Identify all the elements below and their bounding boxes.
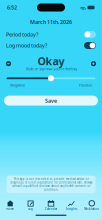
staticText: Home [6, 207, 14, 211]
staticText: Insights [66, 207, 77, 211]
staticText: This app is not intended to provide medi… [10, 177, 92, 191]
staticText: Negative [10, 82, 25, 88]
staticText: Period today? [6, 31, 38, 38]
staticText: March 11th, 2026 [30, 18, 72, 26]
button[interactable]: Calendar [41, 200, 61, 211]
button[interactable]: Raise mood [90, 60, 97, 67]
staticText: Log [28, 207, 33, 211]
staticText: Positive [79, 82, 92, 88]
button[interactable]: Insights [61, 200, 82, 211]
staticText: Log mood today? [6, 42, 47, 49]
button[interactable]: Log mood today? [6, 40, 96, 51]
staticText: Save [45, 97, 57, 104]
staticText: Meditation [84, 207, 99, 211]
button[interactable]: Save [4, 96, 98, 106]
button[interactable]: Meditation [82, 200, 102, 211]
button[interactable]: Period today? [6, 29, 96, 40]
button[interactable]: Log [20, 200, 41, 211]
staticText: Calendar [45, 207, 57, 211]
staticText: 6:52 [7, 4, 17, 11]
staticText: Okay [37, 54, 64, 68]
button[interactable]: Lower mood [5, 60, 12, 67]
staticText: Slide or tap how you're feeling [25, 66, 76, 71]
button[interactable]: Home [0, 200, 20, 211]
